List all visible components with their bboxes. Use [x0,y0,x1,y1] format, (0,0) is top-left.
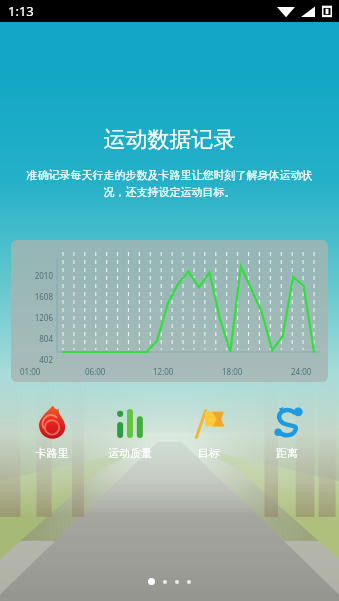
button[interactable]: 距离 [249,405,325,460]
staticText: 01:00 [20,366,41,377]
button[interactable] [148,578,155,585]
staticText: 24:00 [291,366,312,377]
staticText: 目标 [171,446,247,460]
other: 目标 [192,405,226,439]
staticText: 06:00 [85,366,106,377]
button[interactable]: 运动质量 [92,405,168,460]
button[interactable]: 2010 [11,240,328,382]
staticText: 运动质量 [92,446,168,460]
staticText: 1608 [17,291,53,302]
staticText: 804 [17,333,53,344]
button[interactable] [163,580,167,584]
staticText: 12:00 [153,366,174,377]
button[interactable] [187,580,191,584]
staticText: 2010 [17,270,53,281]
other: 距离 [270,405,304,439]
staticText: 准确记录每天行走的步数及卡路里让您时刻了解身体运动状况，还支持设定运动目标。 [22,168,317,199]
button[interactable]: 目标 [171,405,247,460]
other: 运动质量 [113,405,147,439]
staticText: 1:13 [8,2,34,20]
staticText: 距离 [249,446,325,460]
button[interactable] [175,580,179,584]
staticText: 402 [17,354,53,365]
button[interactable]: 卡路里 [14,405,90,460]
staticText: 卡路里 [14,446,90,460]
other: 卡路里 [35,405,69,439]
staticText: 1206 [17,312,53,323]
staticText: 运动数据记录 [0,126,339,154]
staticText: 18:00 [222,366,243,377]
